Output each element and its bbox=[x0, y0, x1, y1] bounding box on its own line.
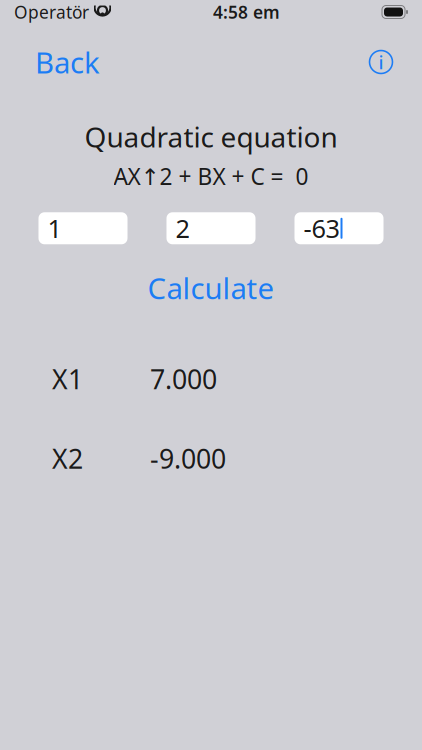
staticText: 4:58 em bbox=[213, 0, 280, 23]
button[interactable]: 1 bbox=[38, 212, 127, 244]
staticText: Quadratic equation bbox=[84, 118, 337, 155]
staticText: -63 bbox=[303, 211, 339, 245]
staticText: X1 bbox=[52, 361, 83, 397]
staticText: AX↑2 + BX + C = 0 bbox=[113, 161, 308, 191]
staticText: X2 bbox=[52, 441, 83, 476]
staticText: -9.000 bbox=[150, 441, 226, 476]
button[interactable]: 2 bbox=[166, 212, 255, 244]
staticText: Operatör bbox=[14, 0, 89, 23]
staticText: i bbox=[378, 50, 383, 74]
button[interactable]: Calculate bbox=[131, 262, 290, 313]
staticText: Calculate bbox=[147, 268, 274, 307]
staticText: Back bbox=[35, 42, 100, 81]
button[interactable]: -63 bbox=[294, 212, 383, 244]
button[interactable]: Info bbox=[364, 45, 398, 79]
button[interactable]: Back bbox=[27, 36, 108, 87]
staticText: 1 bbox=[47, 211, 61, 245]
staticText: 2 bbox=[175, 211, 189, 245]
staticText: 7.000 bbox=[150, 361, 217, 397]
